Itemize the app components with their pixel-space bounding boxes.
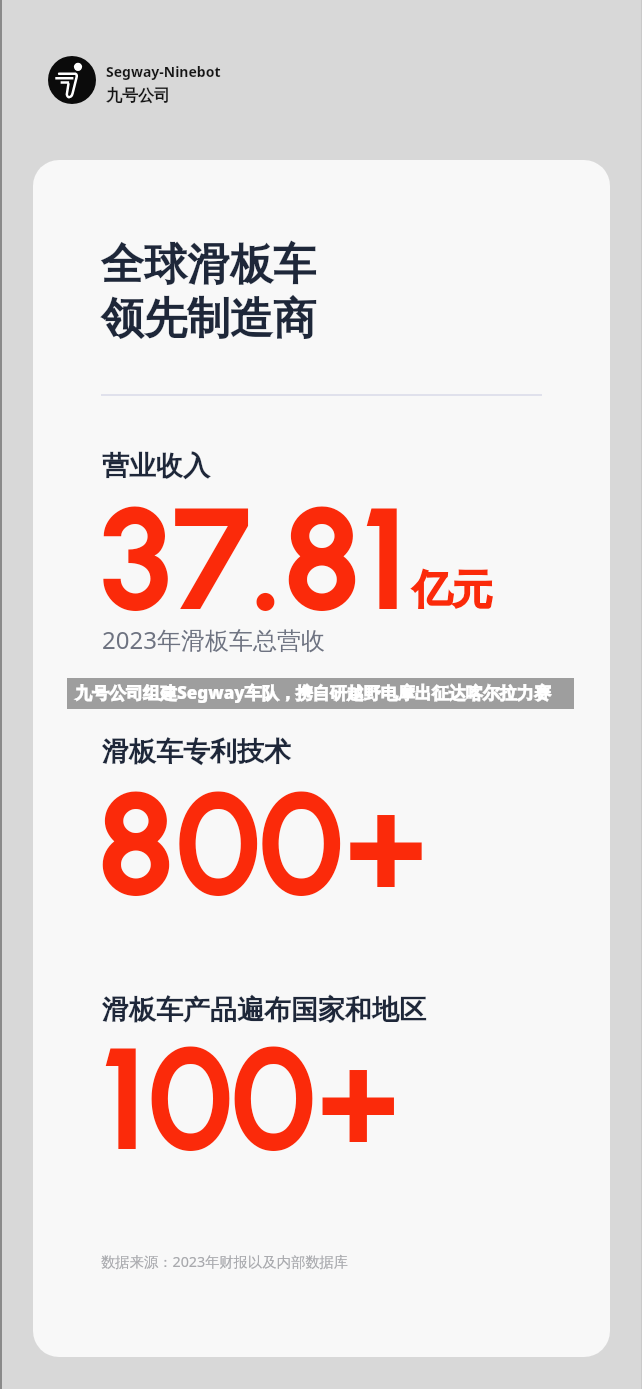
button[interactable]: Segway-Ninebot logo — [48, 56, 211, 104]
staticText: 营业收入 — [102, 449, 210, 483]
staticText: Segway-Ninebot — [106, 62, 221, 81]
staticText: 100+ — [100, 1013, 400, 1185]
staticText: 滑板车专利技术 — [102, 735, 291, 769]
staticText: 2023年滑板车总营收 — [102, 623, 325, 656]
staticText: 九号公司 — [106, 86, 170, 106]
staticText: 九号公司组建Segway车队，携自研越野电摩出征达喀尔拉力赛 — [75, 681, 551, 704]
staticText: 亿元 — [412, 564, 492, 614]
other: Segway-Ninebot logo — [48, 56, 96, 104]
staticText: 数据来源：2023年财报以及内部数据库 — [101, 1252, 349, 1272]
staticText: 800+ — [97, 758, 428, 930]
staticText: 滑板车产品遍布国家和地区 — [102, 993, 426, 1027]
button[interactable]: 九号公司组建Segway车队，携自研越野电摩出征达喀尔拉力赛 — [67, 678, 574, 709]
staticText: 37.81 — [99, 473, 409, 645]
staticText: 全球滑板车 领先制造商 — [101, 238, 316, 345]
